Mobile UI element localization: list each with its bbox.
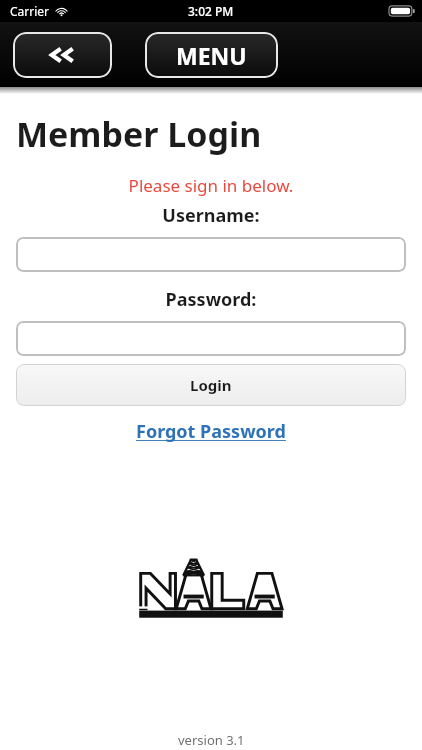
staticText: Member Login bbox=[16, 111, 262, 157]
staticText: version 3.1 bbox=[178, 731, 245, 749]
button[interactable]: Text field bbox=[16, 321, 406, 356]
button[interactable]: Back bbox=[13, 32, 112, 78]
staticText: Forgot Password bbox=[136, 419, 286, 444]
staticText: 3:02 PM bbox=[188, 3, 234, 19]
staticText: MENU bbox=[176, 40, 247, 71]
staticText: Please sign in below. bbox=[0, 174, 422, 197]
button[interactable]: Login bbox=[16, 364, 406, 406]
staticText: Username: bbox=[0, 203, 422, 228]
staticText: Carrier bbox=[10, 3, 50, 19]
button[interactable]: Text field bbox=[16, 237, 406, 272]
button[interactable]: Forgot Password bbox=[136, 419, 286, 444]
button[interactable]: MENU bbox=[145, 32, 278, 78]
staticText: Password: bbox=[0, 287, 422, 312]
staticText: Login bbox=[190, 375, 232, 395]
